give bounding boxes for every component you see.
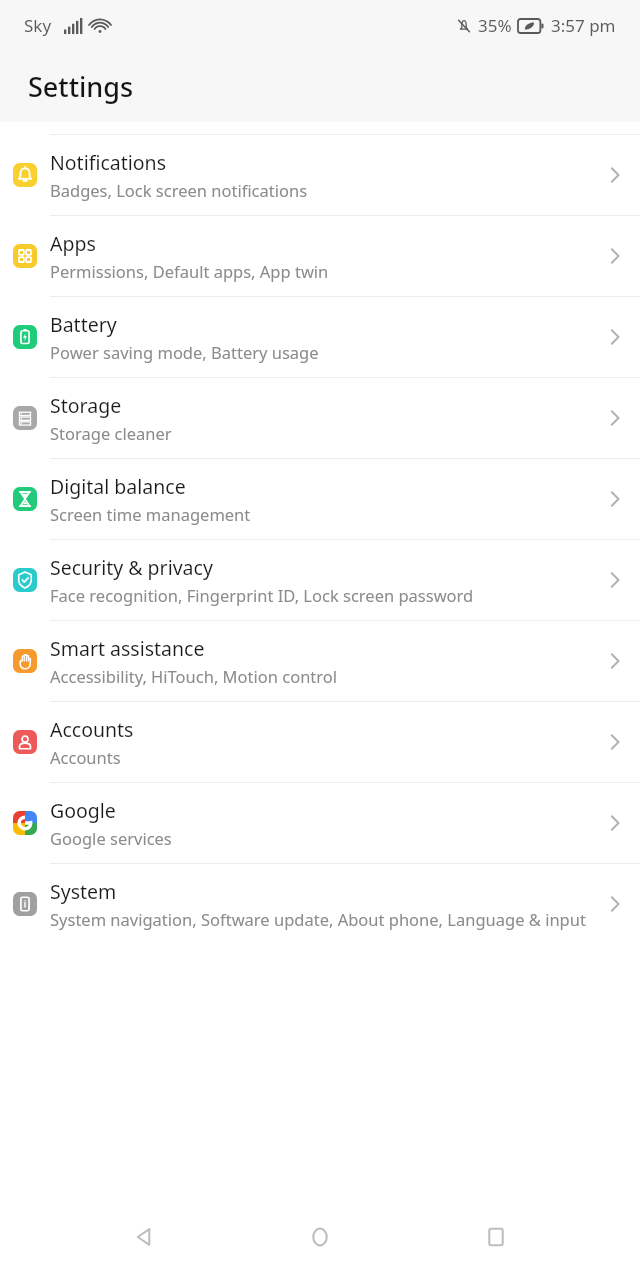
other: Apps [603,244,627,268]
staticText: Power saving mode, Battery usage [50,341,319,363]
staticText: Apps [50,230,96,257]
staticText: 35% [478,14,512,37]
button[interactable]: Notifications [0,135,640,215]
staticText: System [50,878,117,905]
button[interactable]: Smart assistance [0,621,640,701]
staticText: Security & privacy [50,554,213,581]
other: System [603,892,627,916]
button[interactable]: Home [288,1205,352,1269]
staticText: Sky [24,14,52,37]
button[interactable]: Google [0,783,640,863]
button[interactable]: Security & privacy [0,540,640,620]
button[interactable]: Battery [0,297,640,377]
button[interactable]: Back [112,1205,176,1269]
staticText: Permissions, Default apps, App twin [50,260,329,282]
staticText: Face recognition, Fingerprint ID, Lock s… [50,584,474,606]
other: Storage [603,406,627,430]
staticText: System navigation, Software update, Abou… [50,908,586,930]
staticText: Accounts [50,746,121,768]
staticText: Accessibility, HiTouch, Motion control [50,665,338,687]
staticText: Accounts [50,716,134,743]
other: Accounts [603,730,627,754]
staticText: Storage [50,392,122,419]
staticText: Smart assistance [50,635,205,662]
button[interactable]: Accounts [0,702,640,782]
staticText: Screen time management [50,503,251,525]
button[interactable]: Apps [0,216,640,296]
other: Smart assistance [603,649,627,673]
staticText: 3:57 pm [551,14,616,37]
staticText: Storage cleaner [50,422,172,444]
staticText: Settings [28,68,134,105]
staticText: Google services [50,827,172,849]
staticText: Digital balance [50,473,186,500]
button[interactable]: Digital balance [0,459,640,539]
staticText: Notifications [50,149,166,176]
other: Battery [603,325,627,349]
other: Google [603,811,627,835]
button[interactable]: Recent apps [464,1205,528,1269]
staticText: Battery [50,311,117,338]
staticText: Google [50,797,116,824]
other: Security & privacy [603,568,627,592]
other: Notifications [603,163,627,187]
button[interactable]: Storage [0,378,640,458]
other: Digital balance [603,487,627,511]
staticText: Badges, Lock screen notifications [50,179,308,201]
button[interactable]: System [0,864,640,944]
